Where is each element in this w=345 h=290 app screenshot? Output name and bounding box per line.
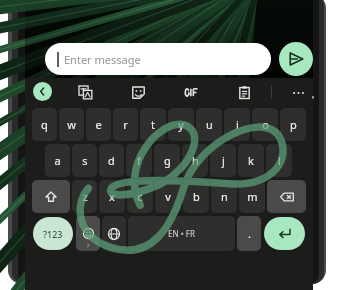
- staticText: EN • FR: [168, 228, 196, 239]
- button[interactable]: Period: [237, 216, 261, 251]
- button[interactable]: Enter: [264, 217, 305, 250]
- button[interactable]: m: [239, 180, 265, 213]
- button[interactable]: y: [168, 108, 194, 141]
- staticText: i: [236, 117, 239, 132]
- button[interactable]: b: [183, 180, 209, 213]
- button[interactable]: c: [127, 180, 153, 213]
- staticText: o: [262, 117, 269, 132]
- button[interactable]: EN • FR: [128, 216, 235, 251]
- button[interactable]: l: [266, 144, 292, 177]
- button[interactable]: e: [86, 108, 111, 141]
- button[interactable]: h: [182, 144, 208, 177]
- button[interactable]: GIF: [181, 82, 201, 102]
- button[interactable]: n: [211, 180, 237, 213]
- staticText: e: [95, 117, 102, 132]
- staticText: l: [278, 153, 281, 168]
- staticText: m: [247, 189, 258, 204]
- staticText: t: [151, 117, 155, 132]
- staticText: c: [137, 189, 143, 204]
- staticText: q: [41, 117, 48, 132]
- button[interactable]: r: [113, 108, 138, 141]
- button[interactable]: a: [45, 144, 70, 177]
- staticText: j: [222, 153, 225, 168]
- button[interactable]: t: [140, 108, 166, 141]
- button[interactable]: k: [238, 144, 264, 177]
- staticText: z: [82, 189, 88, 204]
- button[interactable]: s: [72, 144, 97, 177]
- button[interactable]: Clipboard: [234, 82, 254, 102]
- button[interactable]: i: [224, 108, 250, 141]
- staticText: x: [109, 189, 115, 204]
- staticText: k: [248, 153, 254, 168]
- button[interactable]: Shift: [32, 180, 70, 213]
- staticText: ?123: [43, 228, 63, 240]
- staticText: p: [290, 117, 297, 132]
- button[interactable]: g: [154, 144, 180, 177]
- button[interactable]: f: [126, 144, 152, 177]
- button[interactable]: Backspace: [267, 180, 306, 213]
- staticText: g: [164, 153, 171, 168]
- staticText: .: [248, 226, 251, 241]
- staticText: Enter message: [64, 52, 141, 67]
- button[interactable]: Stickers: [128, 82, 148, 102]
- staticText: f: [137, 153, 141, 168]
- button[interactable]: d: [99, 144, 124, 177]
- staticText: b: [193, 189, 200, 204]
- button[interactable]: x: [99, 180, 125, 213]
- staticText: d: [108, 153, 115, 168]
- button[interactable]: More options: [288, 82, 308, 102]
- button[interactable]: z: [72, 180, 97, 213]
- button[interactable]: Back: [33, 82, 52, 101]
- button[interactable]: u: [196, 108, 222, 141]
- button[interactable]: v: [155, 180, 181, 213]
- staticText: r: [123, 117, 128, 132]
- staticText: s: [82, 153, 88, 168]
- staticText: y: [178, 117, 184, 132]
- staticText: a: [54, 153, 61, 168]
- button[interactable]: o: [252, 108, 278, 141]
- staticText: h: [192, 153, 199, 168]
- button[interactable]: p: [280, 108, 306, 141]
- staticText: v: [165, 189, 171, 204]
- staticText: w: [67, 117, 76, 132]
- button[interactable]: Translate: [75, 82, 95, 102]
- staticText: n: [221, 189, 228, 204]
- staticText: u: [206, 117, 213, 132]
- staticText: ?: [87, 243, 90, 250]
- button[interactable]: Enter message: [45, 43, 271, 75]
- button[interactable]: Send: [279, 42, 313, 76]
- button[interactable]: w: [59, 108, 84, 141]
- button[interactable]: ?123: [33, 217, 73, 250]
- button[interactable]: q: [32, 108, 57, 141]
- button[interactable]: j: [210, 144, 236, 177]
- button[interactable]: Change language: [102, 216, 126, 251]
- button[interactable]: Emoji: [76, 216, 100, 251]
